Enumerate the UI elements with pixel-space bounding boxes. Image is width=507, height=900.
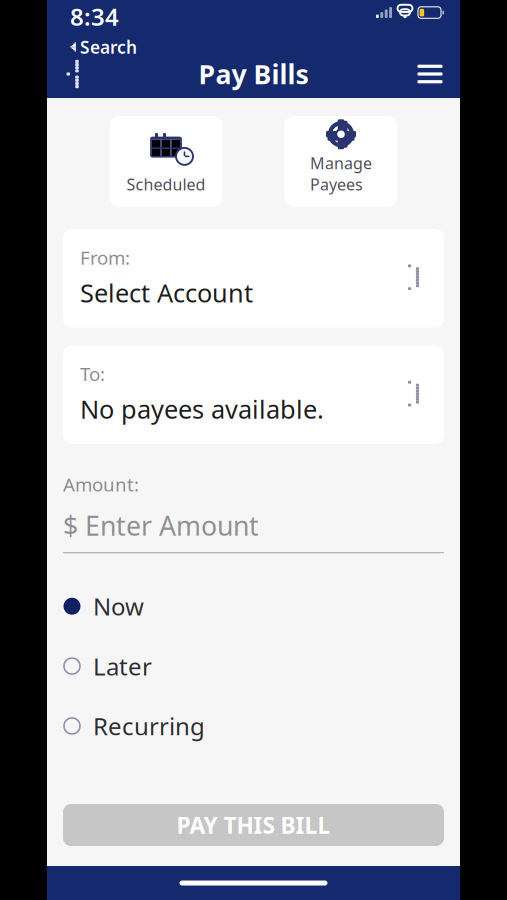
staticText: Later [93,650,152,682]
staticText: PAY THIS BILL [176,810,330,840]
staticText: 8:34 [70,1,119,32]
button[interactable]: Recurring [63,701,444,751]
button[interactable]: Search [70,35,137,58]
button[interactable]: Menu [408,52,452,96]
staticText: No payees available. [80,392,324,426]
button[interactable]: From: [63,229,444,327]
staticText: Now [93,590,144,622]
button[interactable]: Scheduled [109,116,222,207]
staticText: Manage Payees [310,152,372,195]
button[interactable]: Now [63,581,444,631]
button[interactable]: Manage Payees [284,116,397,207]
staticText: Scheduled [126,174,205,195]
staticText: From: [80,245,130,270]
staticText: $ Enter Amount [63,508,259,543]
button[interactable]: To: [63,345,444,444]
button[interactable]: Back [55,52,99,96]
staticText: To: [80,361,105,386]
staticText: Recurring [93,710,205,742]
staticText: Search [80,35,137,58]
staticText: Select Account [80,276,253,309]
button[interactable]: PAY THIS BILL [63,804,444,846]
staticText: Pay Bills [198,56,308,92]
button[interactable]: Later [63,641,444,691]
staticText: Amount: [63,472,139,497]
